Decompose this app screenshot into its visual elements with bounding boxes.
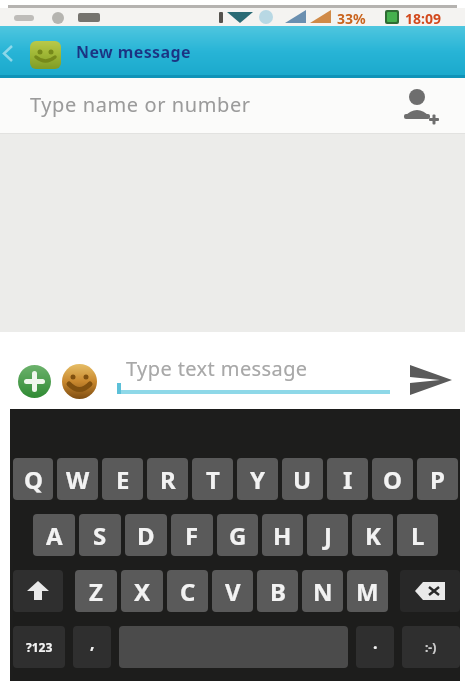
- staticText: W: [66, 463, 90, 496]
- staticText: A: [46, 519, 63, 552]
- button[interactable]: Type text message: [112, 347, 394, 402]
- staticText: 18:09: [405, 9, 441, 27]
- staticText: :-): [425, 639, 437, 655]
- staticText: T: [206, 463, 220, 496]
- staticText: V: [225, 575, 241, 608]
- staticText: M: [356, 575, 379, 608]
- staticText: D: [137, 519, 155, 552]
- button[interactable]: .: [356, 626, 394, 668]
- staticText: S: [93, 519, 107, 552]
- button[interactable]: K: [352, 514, 393, 556]
- button[interactable]: L: [397, 514, 438, 556]
- button[interactable]: X: [121, 570, 163, 612]
- staticText: New message: [76, 41, 191, 63]
- staticText: L: [411, 519, 425, 552]
- button[interactable]: [0, 39, 22, 65]
- button[interactable]: ?123: [13, 626, 65, 668]
- button[interactable]: [18, 365, 51, 398]
- staticText: K: [365, 519, 381, 552]
- staticText: P: [430, 463, 445, 496]
- button[interactable]: ,: [73, 626, 111, 668]
- button[interactable]: N: [302, 570, 343, 612]
- button[interactable]: B: [257, 570, 298, 612]
- staticText: ?123: [26, 639, 53, 655]
- staticText: G: [229, 519, 247, 552]
- button[interactable]: [62, 364, 97, 399]
- button[interactable]: [400, 570, 460, 612]
- staticText: B: [270, 575, 286, 608]
- staticText: .: [373, 632, 378, 654]
- staticText: O: [383, 463, 402, 496]
- staticText: U: [293, 463, 312, 496]
- staticText: Type name or number: [30, 91, 251, 118]
- staticText: C: [180, 575, 196, 608]
- staticText: X: [134, 575, 151, 608]
- button[interactable]: M: [347, 570, 388, 612]
- staticText: Q: [24, 463, 43, 496]
- button[interactable]: E: [102, 458, 143, 500]
- staticText: J: [324, 519, 332, 552]
- button[interactable]: H: [262, 514, 303, 556]
- staticText: 33%: [337, 9, 366, 27]
- button[interactable]: G: [217, 514, 258, 556]
- button[interactable]: [30, 41, 61, 69]
- button[interactable]: W: [57, 458, 98, 500]
- staticText: Y: [250, 463, 266, 496]
- button[interactable]: Type name or number: [0, 78, 465, 134]
- button[interactable]: [404, 352, 458, 404]
- button[interactable]: J: [307, 514, 348, 556]
- button[interactable]: I: [327, 458, 368, 500]
- button[interactable]: S: [79, 514, 121, 556]
- button[interactable]: V: [212, 570, 253, 612]
- staticText: N: [313, 575, 333, 608]
- button[interactable]: [398, 85, 440, 127]
- staticText: ,: [90, 632, 95, 654]
- button[interactable]: U: [282, 458, 323, 500]
- button[interactable]: :-): [402, 626, 460, 668]
- button[interactable]: D: [125, 514, 167, 556]
- button[interactable]: R: [147, 458, 188, 500]
- staticText: H: [273, 519, 292, 552]
- button[interactable]: [13, 570, 63, 612]
- staticText: E: [116, 463, 130, 496]
- staticText: Type text message: [126, 355, 308, 382]
- button[interactable]: Z: [75, 570, 117, 612]
- staticText: I: [343, 463, 353, 496]
- staticText: Z: [89, 575, 103, 608]
- staticText: F: [185, 519, 199, 552]
- button[interactable]: Q: [13, 458, 53, 500]
- button[interactable]: A: [33, 514, 75, 556]
- button[interactable]: O: [372, 458, 413, 500]
- button[interactable]: P: [417, 458, 458, 500]
- staticText: R: [160, 463, 176, 496]
- button[interactable]: Y: [237, 458, 278, 500]
- button[interactable]: F: [171, 514, 213, 556]
- button[interactable]: T: [192, 458, 233, 500]
- button[interactable]: C: [167, 570, 208, 612]
